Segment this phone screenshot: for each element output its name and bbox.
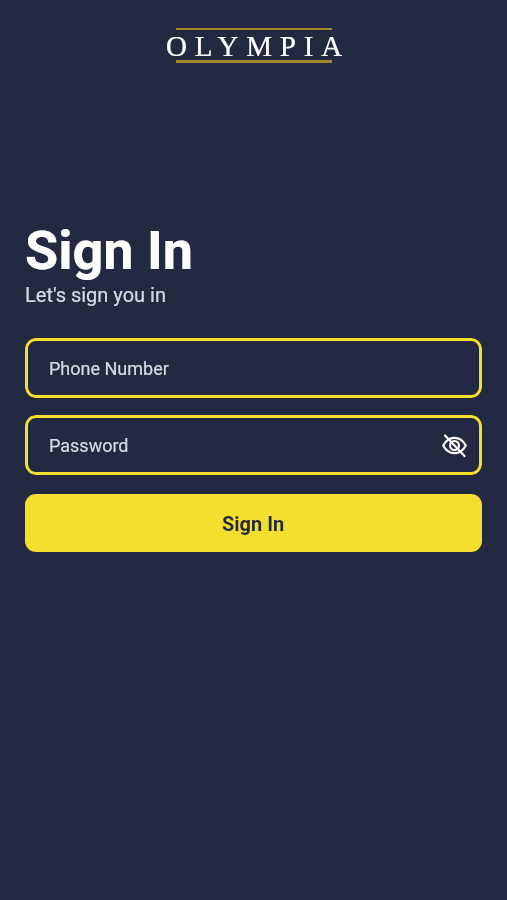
button[interactable]: Sign In — [25, 494, 482, 552]
button[interactable]: Show password — [433, 424, 475, 466]
staticText: Let's sign you in — [25, 283, 166, 306]
staticText: Phone Number — [49, 358, 169, 379]
staticText: OLYMPIA — [166, 30, 350, 62]
staticText: Password — [49, 435, 129, 456]
button[interactable]: Password — [25, 415, 482, 475]
button[interactable]: Phone Number — [25, 338, 482, 398]
staticText: Sign In — [25, 219, 194, 282]
staticText: Sign In — [222, 512, 285, 535]
